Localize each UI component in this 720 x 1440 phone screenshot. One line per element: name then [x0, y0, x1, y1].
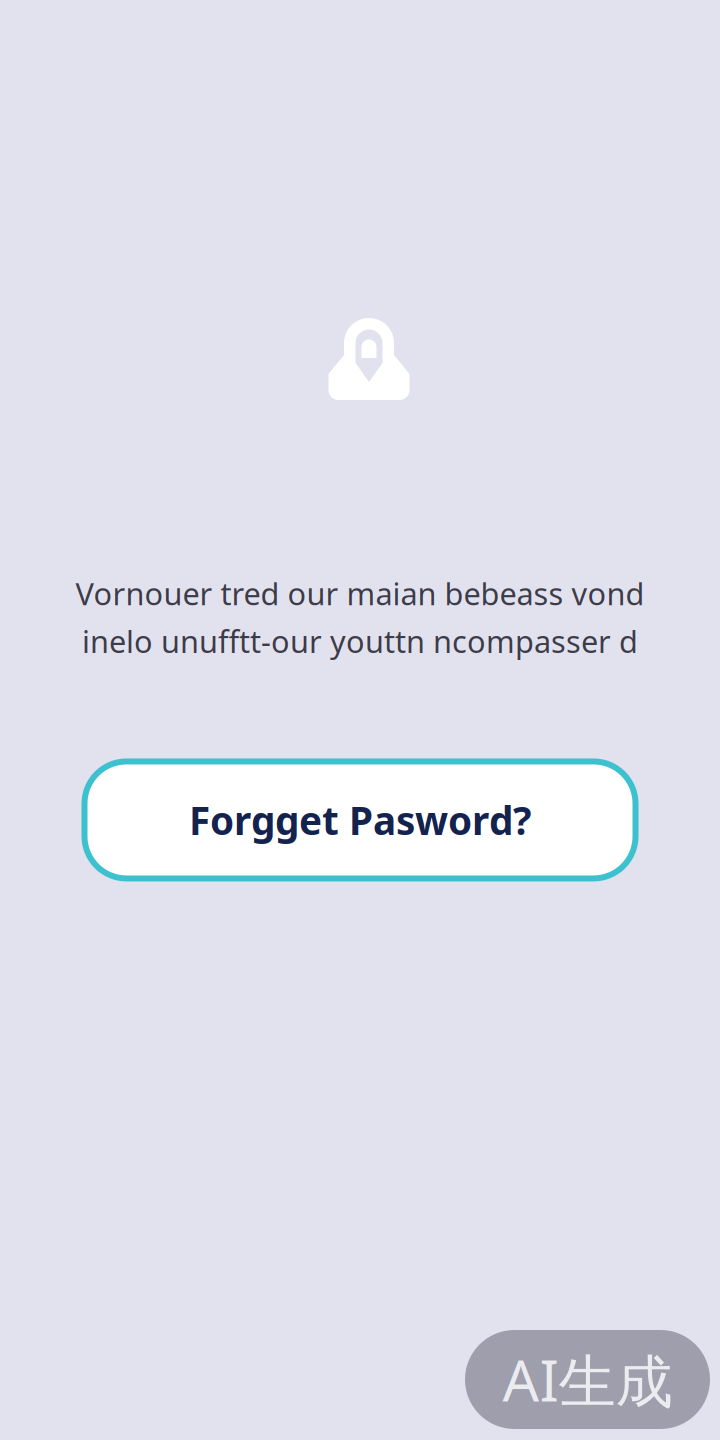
staticText: inelo unufftt-our youttn ncompasser d — [82, 621, 638, 661]
button[interactable]: Forgget Pasword? — [84, 761, 635, 878]
staticText: AI生成 — [502, 1341, 672, 1418]
staticText: Vornouer tred our maian bebeass vond — [75, 573, 644, 614]
staticText: Forgget Pasword? — [189, 794, 531, 846]
